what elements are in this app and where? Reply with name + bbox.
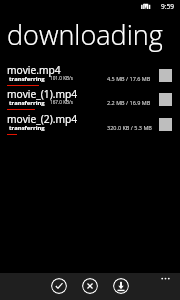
button[interactable]: movie_(1).mp4 — [0, 87, 180, 111]
button[interactable]: Accept — [51, 278, 67, 294]
staticText: transferring — [9, 75, 45, 83]
button[interactable]: Download — [113, 278, 129, 294]
staticText: transferring — [9, 99, 45, 107]
staticText: 167.0 KB/s — [50, 99, 74, 105]
staticText: 320.0 KB / 5.3 MB — [107, 124, 152, 131]
button[interactable]: movie_(2).mp4 — [0, 112, 180, 136]
staticText: 9:59 — [161, 2, 174, 11]
staticText: 4.5 MB / 17.6 MB — [107, 75, 151, 82]
staticText: 101.0 KB/s — [50, 75, 74, 81]
button[interactable]: More options — [158, 273, 180, 287]
staticText: movie.mp4 — [7, 63, 61, 77]
staticText: movie_(2).mp4 — [7, 112, 78, 126]
staticText: downloading — [7, 16, 163, 53]
staticText: movie_(1).mp4 — [7, 87, 78, 101]
staticText: transferring — [9, 124, 45, 132]
button[interactable]: Signal and battery status — [140, 3, 152, 11]
button[interactable]: movie.mp4 — [0, 63, 180, 87]
staticText: 2.2 MB / 16.9 MB — [107, 99, 151, 106]
button[interactable]: Cancel — [82, 278, 98, 294]
